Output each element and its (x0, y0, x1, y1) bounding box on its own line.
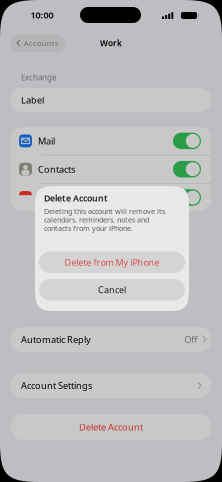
staticText: Cancel (98, 284, 126, 296)
staticText: Delete Account (79, 421, 143, 433)
staticText: Deleting this account will remove its ca… (44, 206, 165, 233)
staticText: 10:00 (30, 9, 53, 21)
button[interactable]: Calendars (11, 184, 211, 211)
staticText: Off (184, 333, 197, 346)
button[interactable]: Mail (11, 127, 211, 155)
staticText: Automatic Reply (21, 333, 91, 346)
staticText: Delete from My iPhone (64, 256, 159, 268)
button[interactable]: Account Settings (11, 373, 211, 398)
staticText: Exchange (21, 72, 57, 83)
button[interactable]: Delete from My iPhone (39, 251, 185, 273)
button[interactable]: Cancel (39, 279, 185, 300)
staticText: Accounts (24, 38, 59, 48)
staticText: Mail (38, 135, 55, 147)
button[interactable]: Accounts (11, 34, 66, 52)
staticText: Account Settings (21, 379, 92, 392)
staticText: Work (100, 37, 122, 49)
staticText: Contacts (38, 163, 75, 175)
button[interactable]: Automatic Reply (11, 327, 211, 352)
staticText: Delete Account (44, 192, 108, 204)
staticText: Calendars (38, 191, 81, 204)
button[interactable]: Contacts (11, 155, 211, 183)
staticText: Label (21, 94, 44, 106)
button[interactable]: Delete Account (11, 414, 211, 440)
